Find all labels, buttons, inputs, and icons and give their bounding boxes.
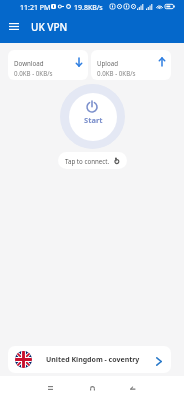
button[interactable]: Home bbox=[80, 376, 104, 400]
staticText: 11:21 PM bbox=[20, 3, 51, 13]
staticText: Upload bbox=[97, 59, 118, 67]
staticText: 0.0KB - 0KB/s bbox=[14, 69, 53, 77]
staticText: United Kingdom - coventry bbox=[46, 355, 140, 365]
staticText: 0.0KB - 0KB/s bbox=[97, 69, 136, 77]
button[interactable]: United Kingdom - coventry bbox=[8, 346, 171, 373]
staticText: UK VPN bbox=[31, 20, 68, 34]
button[interactable]: Recent apps bbox=[38, 376, 62, 400]
button[interactable]: Back bbox=[120, 376, 144, 400]
staticText: 19.8KB/s bbox=[74, 3, 103, 13]
button[interactable]: Start VPN bbox=[60, 84, 125, 149]
button[interactable]: Upload bbox=[91, 50, 171, 80]
staticText: Tap to connect. bbox=[65, 157, 110, 165]
button[interactable]: Download bbox=[8, 50, 88, 80]
button[interactable]: Menu bbox=[0, 13, 27, 40]
button[interactable]: Tap to connect. bbox=[58, 152, 127, 169]
staticText: Download bbox=[14, 59, 44, 67]
staticText: Start bbox=[84, 115, 103, 125]
